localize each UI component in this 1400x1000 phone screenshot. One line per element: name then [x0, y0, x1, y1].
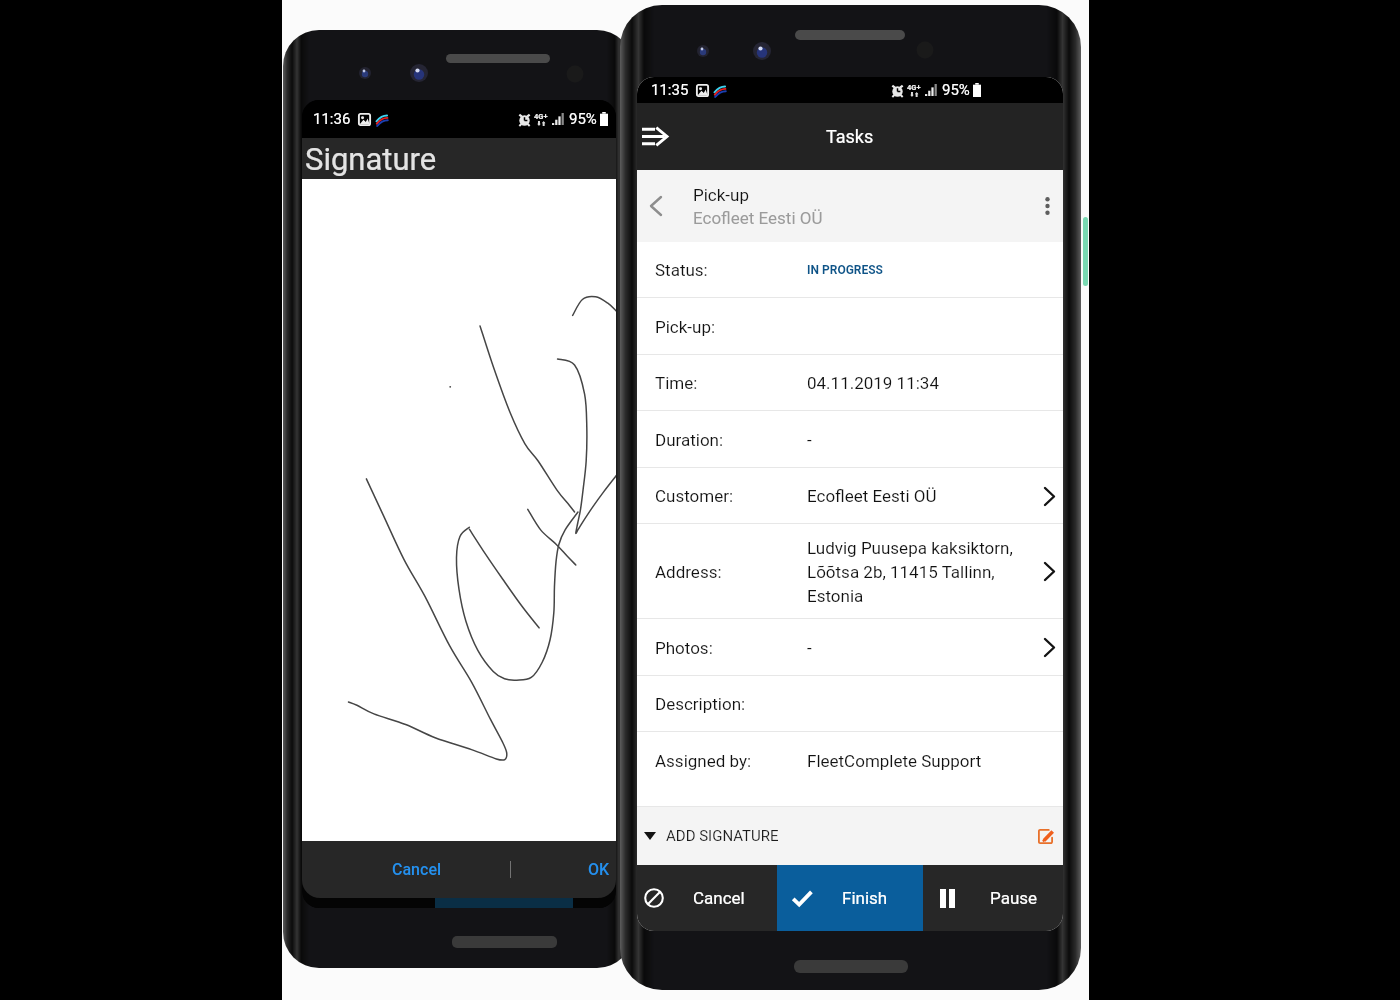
staticText: 04.11.2019 11:34	[807, 373, 939, 393]
staticText: 95%	[569, 110, 597, 128]
staticText: Duration:	[655, 430, 724, 450]
button[interactable]: Finish	[777, 865, 923, 931]
staticText: Status:	[655, 260, 708, 280]
button[interactable]: Duration:	[637, 411, 1063, 468]
staticText: -	[807, 638, 812, 658]
button[interactable]: Open navigation menu	[637, 103, 673, 170]
button[interactable]: More options	[1032, 170, 1063, 242]
button[interactable]: Pause	[923, 865, 1063, 931]
button[interactable]: Cancel	[637, 865, 777, 931]
staticText: IN PROGRESS	[807, 263, 883, 277]
staticText: 11:36	[313, 110, 351, 128]
staticText: Customer:	[655, 486, 734, 506]
staticText: ADD SIGNATURE	[666, 827, 779, 845]
button[interactable]: Customer:	[637, 468, 1063, 524]
button[interactable]: Description:	[637, 676, 1063, 732]
staticText: Finish	[842, 888, 888, 908]
staticText: Address:	[655, 562, 722, 582]
staticText: 4G+	[907, 83, 921, 92]
staticText: Photos:	[655, 638, 713, 658]
other: Add signature	[1028, 819, 1062, 853]
other: Back	[637, 170, 674, 242]
staticText: Description:	[655, 694, 746, 714]
staticText: Ludvig Puusepa kaksiktorn, Lõõtsa 2b, 11…	[807, 538, 1013, 606]
staticText: OK	[588, 860, 610, 879]
staticText: 11:35	[651, 81, 689, 99]
button[interactable]: Status:	[637, 242, 1063, 298]
button[interactable]: Cancel	[327, 841, 507, 898]
staticText: Time:	[655, 373, 698, 393]
staticText: 4G+	[534, 112, 548, 121]
staticText: Signature	[305, 141, 437, 177]
staticText: Tasks	[826, 126, 874, 147]
button[interactable]: Back	[637, 170, 1063, 242]
button[interactable]: OK	[513, 841, 616, 898]
button[interactable]: Assigned by:	[637, 732, 1063, 807]
staticText: Pause	[990, 888, 1038, 908]
button[interactable]: Time:	[637, 355, 1063, 411]
button[interactable]: Pick-up:	[637, 298, 1063, 355]
staticText: Cancel	[693, 888, 745, 908]
staticText: Pick-up	[693, 185, 749, 205]
staticText: Ecofleet Eesti OÜ	[807, 486, 937, 506]
button[interactable]: Photos:	[637, 619, 1063, 676]
button[interactable]: Address:	[637, 524, 1063, 619]
staticText: Cancel	[392, 860, 442, 879]
staticText: FleetComplete Support	[807, 751, 982, 771]
staticText: Pick-up:	[655, 317, 716, 337]
button[interactable]: ADD SIGNATURE	[637, 807, 1063, 865]
staticText: Assigned by:	[655, 751, 752, 771]
staticText: Ecofleet Eesti OÜ	[693, 208, 823, 228]
staticText: -	[807, 430, 812, 450]
staticText: 95%	[942, 81, 970, 99]
